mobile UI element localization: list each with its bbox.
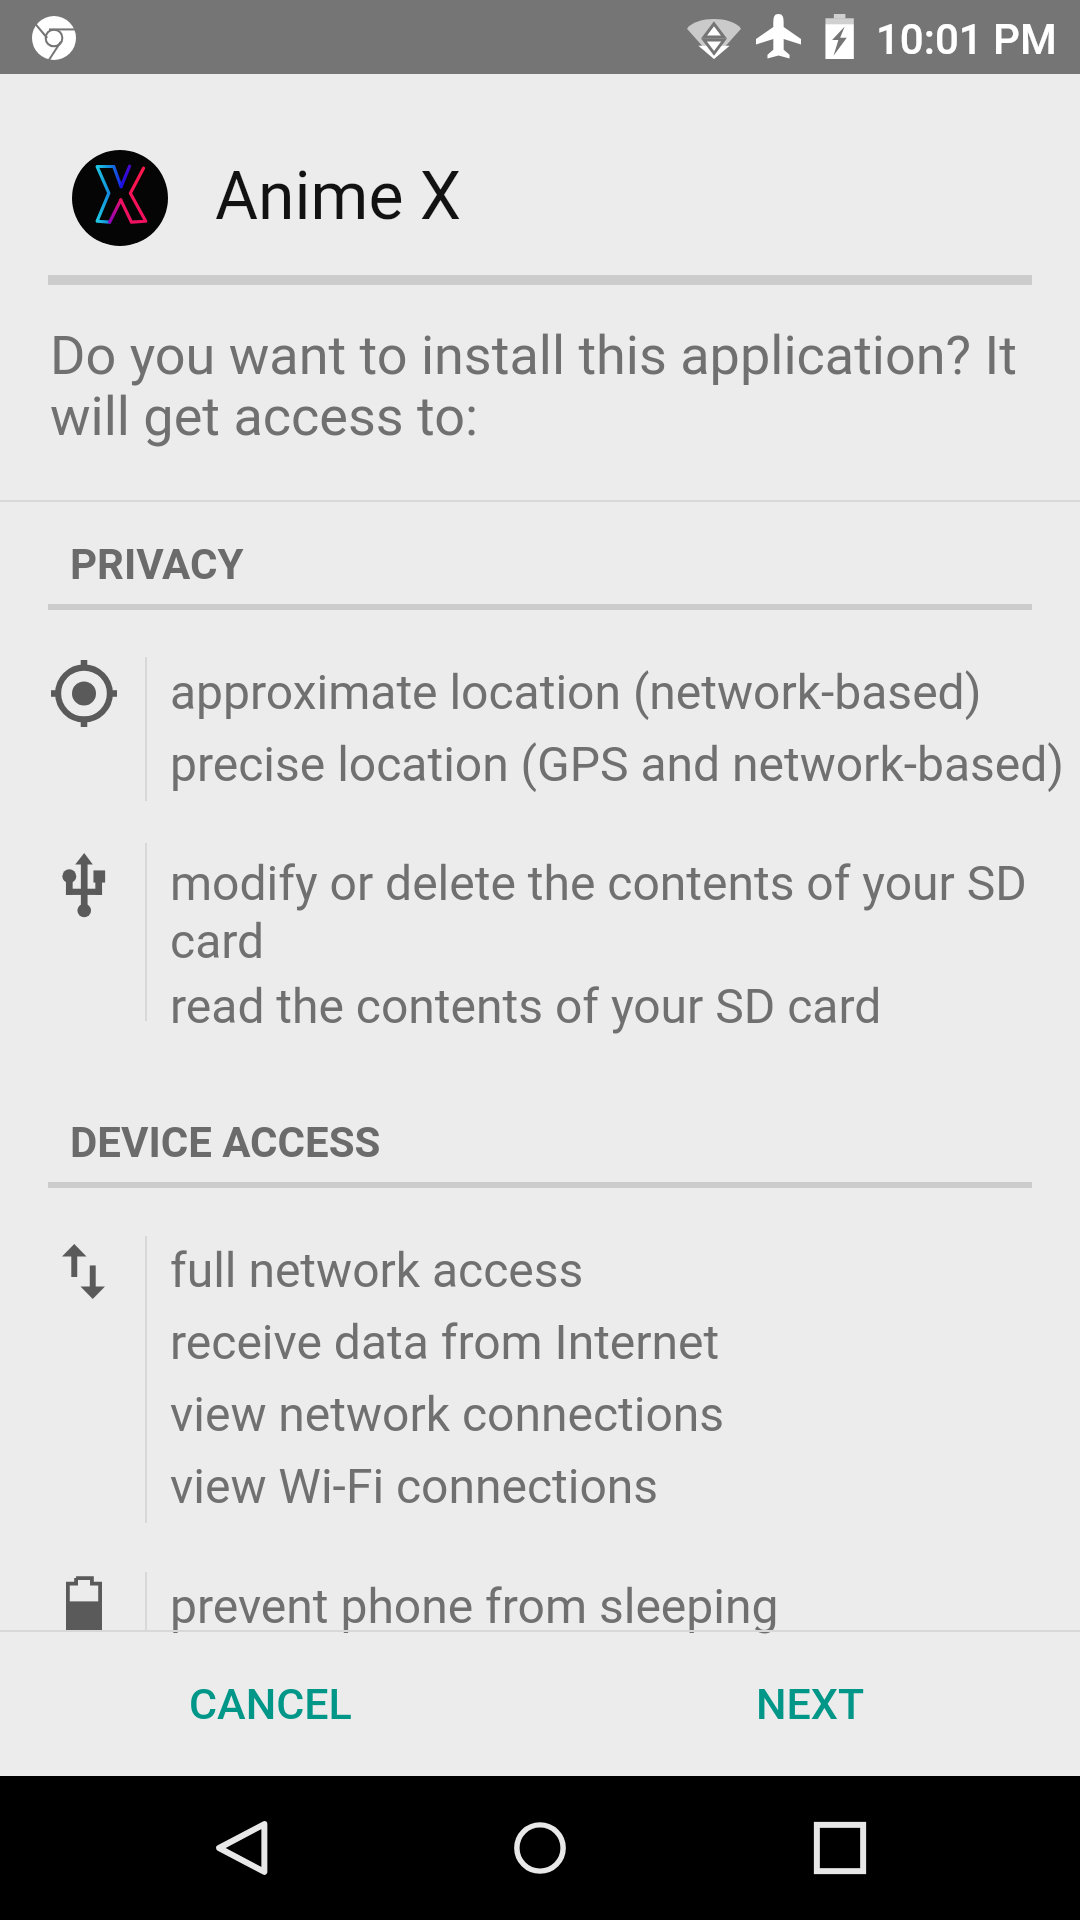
staticText: prevent phone from sleeping	[170, 1577, 779, 1635]
button[interactable]: Recents	[780, 1788, 900, 1908]
button[interactable]: NEXT	[540, 1632, 1080, 1776]
button[interactable]: Back	[182, 1788, 302, 1908]
staticText: read the contents of your SD card	[170, 977, 882, 1035]
staticText: view network connections	[170, 1385, 725, 1443]
staticText: DEVICE ACCESS	[70, 1118, 381, 1167]
staticText: Anime X	[215, 158, 462, 235]
staticText: precise location (GPS and network-based)	[170, 735, 1065, 793]
staticText: full network access	[170, 1241, 584, 1299]
staticText: view Wi-Fi connections	[170, 1457, 659, 1515]
staticText: 10:01 PM	[876, 15, 1057, 64]
button[interactable]: Home	[480, 1788, 600, 1908]
staticText: approximate location (network-based)	[170, 663, 982, 721]
staticText: PRIVACY	[70, 540, 244, 589]
staticText: receive data from Internet	[170, 1313, 720, 1371]
staticText: CANCEL	[189, 1679, 352, 1729]
staticText: modify or delete the contents of your SD…	[170, 854, 1068, 970]
button[interactable]: CANCEL	[0, 1632, 540, 1776]
staticText: NEXT	[756, 1679, 865, 1729]
staticText: Do you want to install this application?…	[50, 326, 1035, 448]
